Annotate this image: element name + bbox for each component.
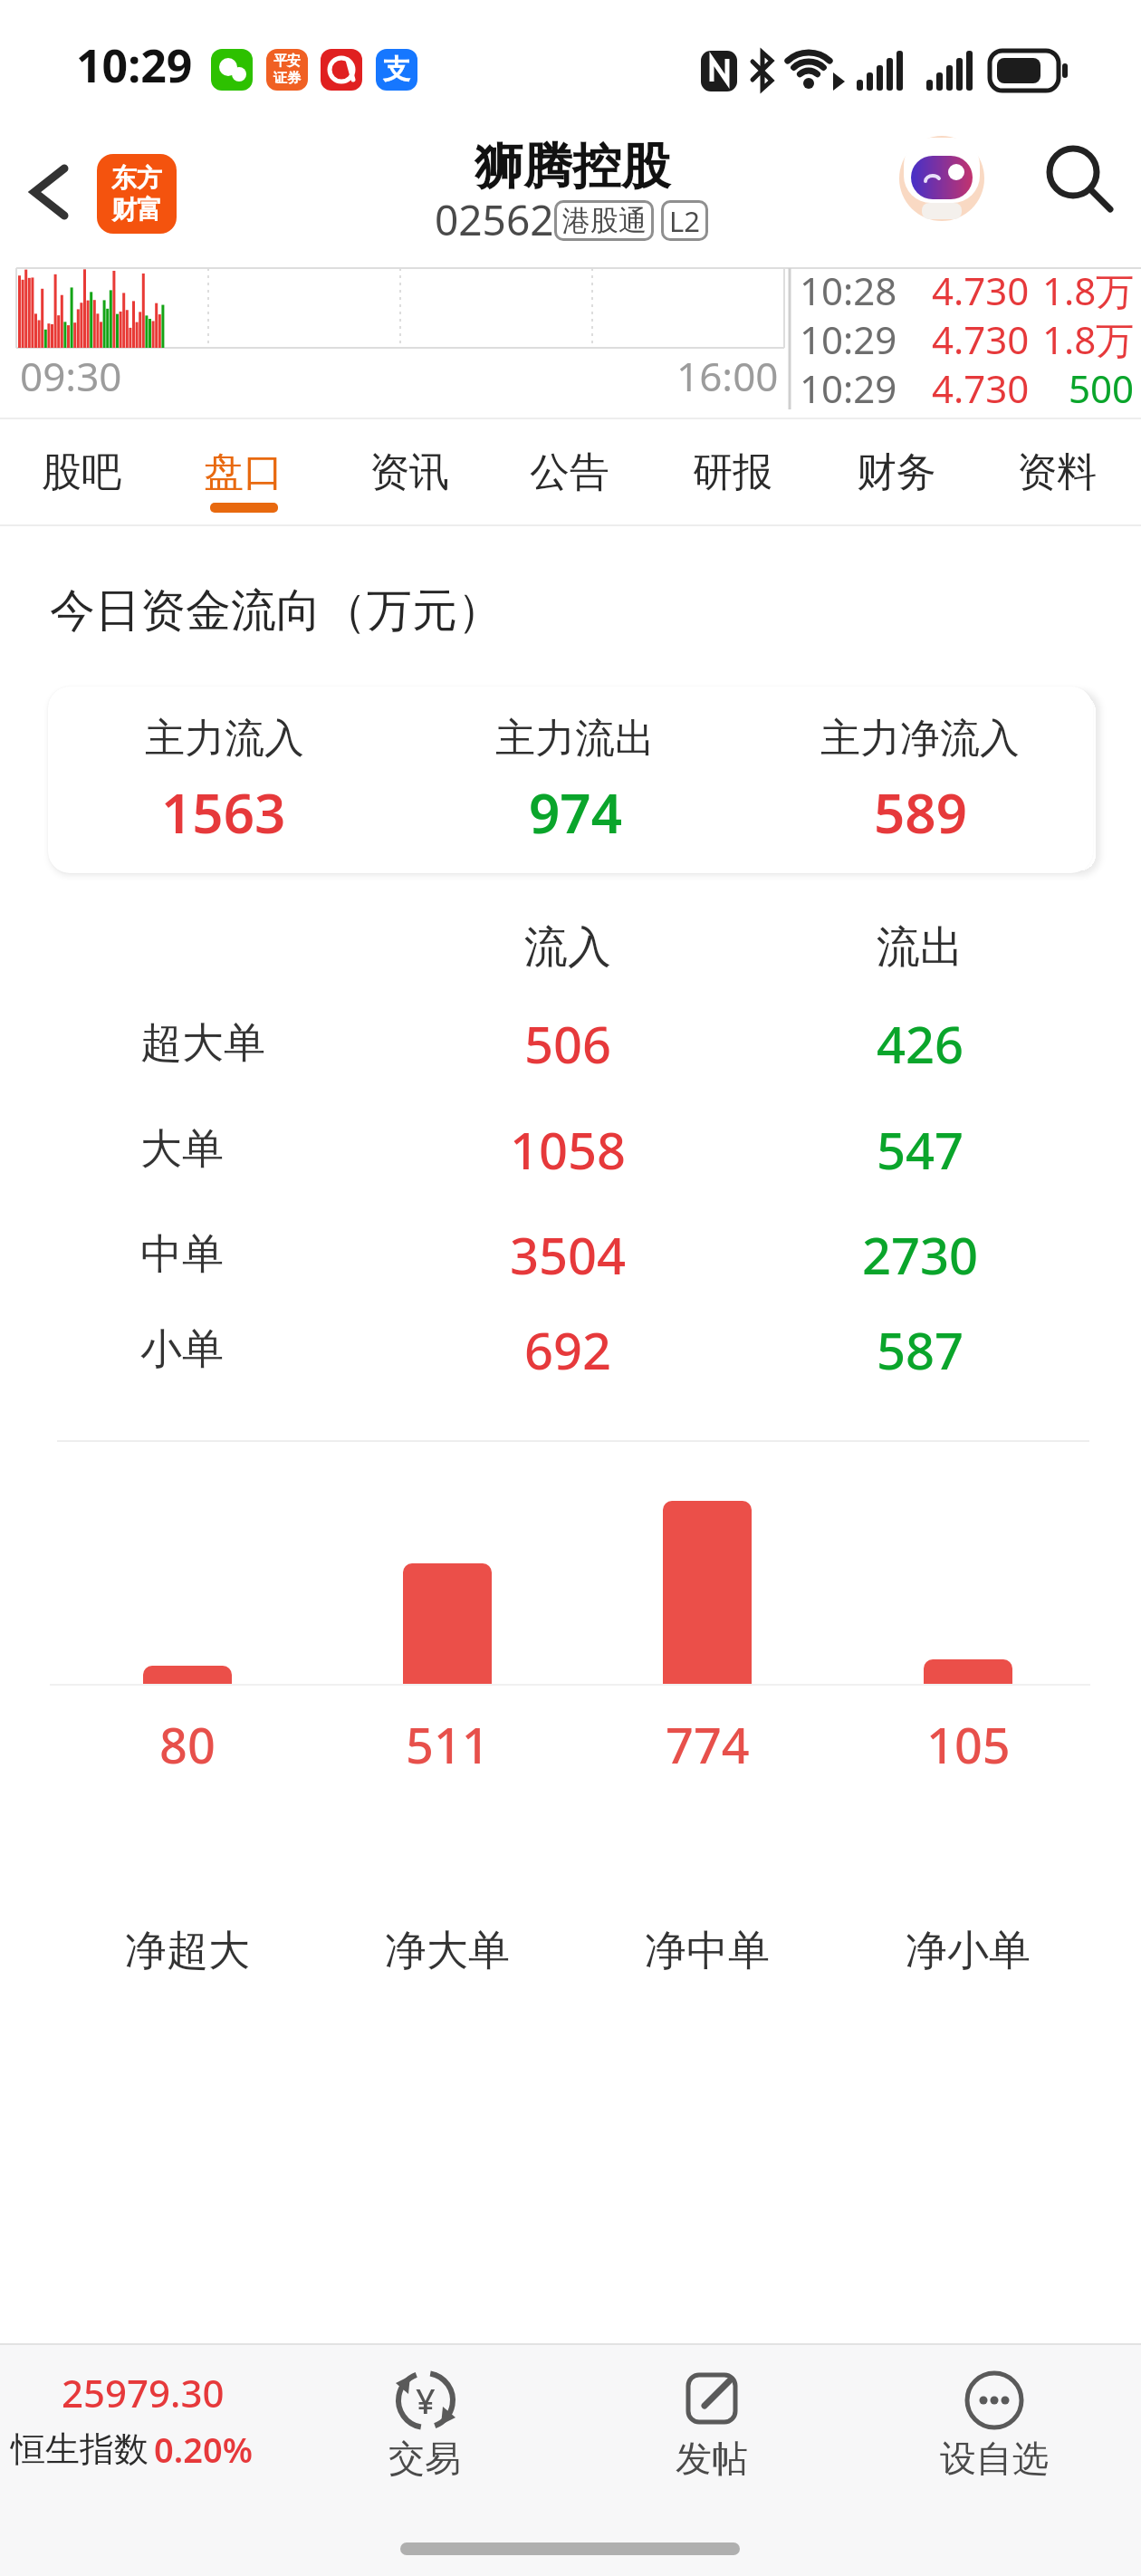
staticText: 净超大 [125,1925,250,1977]
staticText: 774 [666,1711,750,1778]
staticText: 587 [877,1315,964,1384]
staticText: 1.8万 [1042,313,1135,365]
staticText: 2730 [862,1220,979,1289]
staticText: 设自选 [940,2436,1049,2481]
staticText: 974 [529,775,622,850]
staticText: 净小单 [906,1925,1031,1977]
staticText: 4.730 [932,313,1030,365]
staticText: 589 [874,775,967,850]
staticText: 中单 [140,1228,224,1281]
staticText: 692 [524,1315,612,1384]
staticText: 506 [524,1009,612,1078]
button[interactable]: 股吧 [2,418,161,525]
staticText: 股吧 [42,447,121,497]
button[interactable] [1041,140,1123,222]
button[interactable]: 资讯 [330,418,489,525]
staticText: 16:00 [676,349,779,403]
button[interactable] [896,134,990,228]
staticText: 1.8万 [1042,264,1135,316]
staticText: 恒生指数 [11,2427,149,2471]
staticText: 09:30 [20,349,122,403]
staticText: 511 [406,1711,490,1778]
staticText: 交易 [388,2436,461,2481]
staticText: ¥ [416,2377,436,2424]
staticText: 资讯 [369,447,449,497]
staticText: 500 [1069,362,1135,414]
staticText: 25979.30 [62,2367,225,2418]
staticText: 财富 [111,194,162,226]
staticText: 主力流入 [145,714,304,764]
button[interactable]: 研报 [653,418,812,525]
staticText: 小单 [140,1323,224,1376]
staticText: 支 [383,53,410,87]
staticText: 净大单 [385,1925,510,1977]
staticText: 公告 [530,447,609,497]
staticText: 东方 [111,162,162,194]
button[interactable] [18,154,81,234]
staticText: 净中单 [645,1925,770,1977]
staticText: 超大单 [140,1017,265,1070]
staticText: 426 [877,1009,964,1078]
button[interactable] [48,687,1093,873]
button[interactable] [631,2355,792,2491]
staticText: 02562 [435,191,554,248]
staticText: 10:28 [800,264,897,316]
staticText: 10:29 [76,34,193,96]
button[interactable] [0,2346,272,2491]
staticText: 财务 [857,447,936,497]
staticText: 80 [159,1711,216,1778]
staticText: 1563 [161,775,286,850]
button[interactable] [914,2355,1075,2491]
staticText: 主力净流入 [820,714,1020,764]
staticText: 547 [877,1115,964,1184]
button[interactable]: 资料 [977,418,1136,525]
staticText: 3504 [510,1220,627,1289]
staticText: L2 [669,202,700,240]
staticText: 10:29 [800,313,897,365]
staticText: 港股通 [562,203,647,238]
staticText: 流入 [524,920,611,975]
staticText: 今日资金流向（万元） [50,582,503,639]
staticText: 证券 [273,70,301,87]
button[interactable]: 盘口 [164,418,323,525]
button[interactable]: 财务 [817,418,976,525]
staticText: 大单 [140,1123,224,1176]
staticText: 4.730 [932,264,1030,316]
staticText: 0.20% [154,2426,253,2473]
staticText: 资料 [1017,447,1097,497]
staticText: 发帖 [676,2436,748,2481]
staticText: 平安 [273,53,301,70]
staticText: 主力流出 [495,714,655,764]
staticText: 10:29 [800,362,897,414]
staticText: 研报 [693,447,772,497]
staticText: 流出 [877,920,964,975]
staticText: 105 [926,1711,1011,1778]
staticText: 4.730 [932,362,1030,414]
button[interactable] [344,2355,505,2491]
staticText: 狮腾控股 [475,136,670,197]
button[interactable]: 公告 [490,418,649,525]
staticText: 1058 [510,1115,627,1184]
staticText: 盘口 [204,447,283,497]
